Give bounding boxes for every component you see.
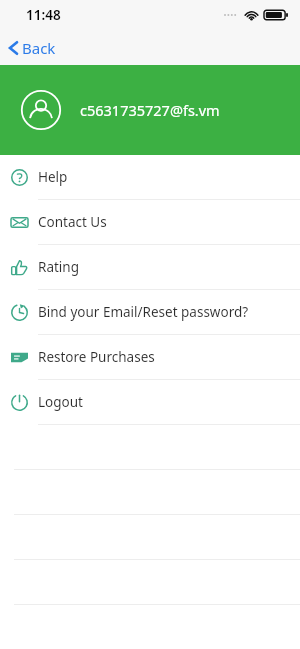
staticText: Rating	[38, 258, 79, 276]
button[interactable]: Restore Purchases	[0, 335, 300, 379]
staticText: Help	[38, 168, 68, 186]
button[interactable]: Bind Email	[0, 290, 300, 334]
staticText: Restore Purchases	[38, 348, 155, 366]
button[interactable]: Logout	[0, 380, 300, 424]
button[interactable]: Back	[0, 34, 70, 62]
staticText: 11:48	[26, 6, 61, 24]
button[interactable]: Contact Us	[0, 200, 300, 244]
button[interactable]: Help	[0, 155, 300, 199]
staticText: Back	[22, 38, 56, 58]
staticText: c5631735727@fs.vm	[80, 100, 220, 120]
staticText: Logout	[38, 393, 83, 411]
staticText: Contact Us	[38, 213, 107, 231]
staticText: Bind your Email/Reset password?	[38, 303, 249, 321]
button[interactable]: Rating	[0, 245, 300, 289]
button[interactable]: c5631735727@fs.vm	[0, 65, 300, 155]
